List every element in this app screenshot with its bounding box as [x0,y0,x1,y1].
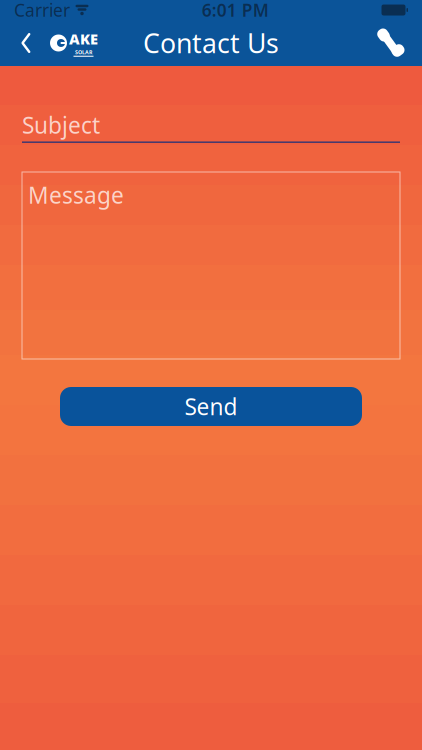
staticText: 6:01 PM [202,0,269,21]
button[interactable]: Back [6,21,46,65]
staticText: Subject [22,110,100,140]
staticText: Carrier [14,0,70,21]
staticText: Message [28,180,124,210]
button[interactable]: Message [22,172,400,359]
staticText: Contact Us [143,25,279,61]
button[interactable]: Subject [22,110,400,143]
staticText: SOLAR [75,49,92,56]
staticText: AKE [69,29,98,49]
button[interactable]: Send [60,387,362,426]
staticText: Send [184,391,237,421]
button[interactable]: Call [364,21,416,65]
button[interactable]: AKE Solar [46,21,102,65]
